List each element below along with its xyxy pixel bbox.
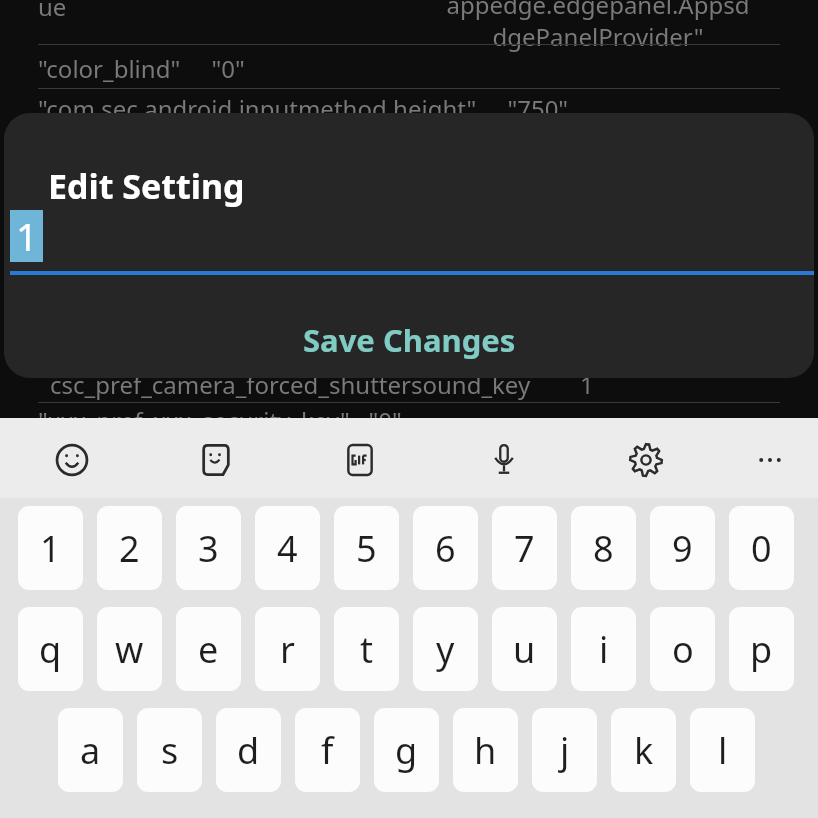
staticText: a [80,726,101,775]
staticText: Save Changes [303,319,516,361]
staticText: p [750,625,773,674]
staticText: u [513,625,536,674]
button[interactable]: i [571,607,636,691]
staticText: ue [38,0,67,23]
button[interactable]: 3 [176,506,241,590]
staticText: Edit Setting [48,163,245,209]
staticText: appedge.edgepanel.Appsd dgePanelProvider… [418,0,778,53]
staticText: i [599,625,609,674]
button[interactable]: g [374,708,439,792]
staticText: csc_pref_camera_forced_shuttersound_key … [50,368,594,401]
button[interactable]: t [334,607,399,691]
staticText: e [198,625,219,674]
staticText: y [436,625,455,674]
button[interactable]: a [58,708,123,792]
button[interactable]: GIF [332,438,388,482]
button[interactable]: Save Changes [4,308,814,372]
button[interactable]: l [690,708,755,792]
staticText: "com.sec.android.inputmethod.height" "75… [38,92,569,125]
button[interactable]: d [216,708,281,792]
button[interactable]: p [729,607,794,691]
staticText: f [321,726,334,775]
button[interactable]: e [176,607,241,691]
button[interactable]: 9 [650,506,715,590]
staticText: 3 [198,524,219,573]
button[interactable]: 5 [334,506,399,590]
staticText: s [161,726,179,775]
staticText: 1 [40,524,61,573]
staticText: l [718,726,728,775]
button[interactable]: More options [742,438,798,482]
staticText: 8 [593,524,614,573]
staticText: h [474,726,497,775]
button[interactable]: Emoji [44,438,100,482]
button[interactable]: 7 [492,506,557,590]
staticText: 7 [514,524,535,573]
staticText: w [115,625,144,674]
button[interactable]: 6 [413,506,478,590]
button[interactable]: r [255,607,320,691]
staticText: 6 [435,524,456,573]
button[interactable]: f [295,708,360,792]
button[interactable]: 2 [97,506,162,590]
button[interactable]: 0 [729,506,794,590]
staticText: 2 [119,524,140,573]
staticText: 1 [16,210,38,262]
button[interactable]: Voice input [476,438,532,482]
staticText: "xxx_pref_xxx_security_key" "0" [38,404,402,437]
staticText: 0 [751,524,772,573]
staticText: 9 [672,524,693,573]
staticText: k [634,726,654,775]
button[interactable]: w [97,607,162,691]
staticText: t [360,625,373,674]
button[interactable]: 1 [18,506,83,590]
button[interactable]: j [532,708,597,792]
staticText: g [395,726,418,775]
button[interactable]: o [650,607,715,691]
staticText: d [237,726,260,775]
staticText: q [39,625,62,674]
button[interactable]: u [492,607,557,691]
staticText: 5 [356,524,377,573]
button[interactable]: h [453,708,518,792]
button[interactable]: Keyboard settings [618,438,674,482]
staticText: "color_blind" "0" [38,52,245,85]
button[interactable]: s [137,708,202,792]
button[interactable]: q [18,607,83,691]
button[interactable]: k [611,708,676,792]
staticText: r [280,625,295,674]
staticText: o [672,625,694,674]
staticText: 4 [277,524,298,573]
button[interactable]: Stickers [188,438,244,482]
button[interactable]: y [413,607,478,691]
button[interactable]: 8 [571,506,636,590]
button[interactable]: 4 [255,506,320,590]
staticText: j [560,726,570,775]
